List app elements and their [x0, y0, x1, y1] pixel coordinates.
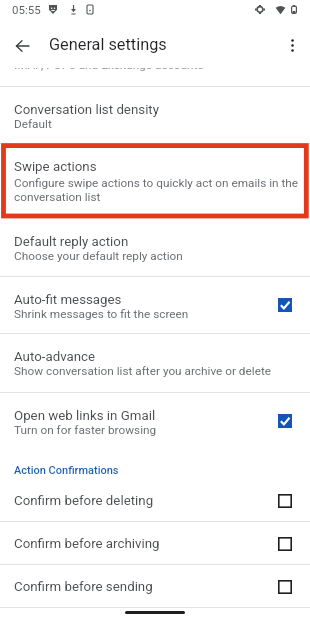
button[interactable]: Default reply action	[0, 219, 310, 277]
staticText: Show conversation list after you archive…	[14, 364, 272, 378]
staticText: Shrink messages to fit the screen	[14, 307, 189, 321]
staticText: Turn on for faster browsing	[14, 423, 157, 437]
staticText: Default reply action	[14, 234, 129, 250]
staticText: Choose your default reply action	[14, 249, 183, 263]
staticText: Configure swipe actions to quickly act o…	[14, 176, 301, 204]
staticText: Confirm before sending	[14, 579, 153, 595]
button[interactable]: Confirm before sending	[0, 565, 310, 608]
button[interactable]: Back	[6, 30, 38, 62]
staticText: 05:55	[12, 3, 41, 16]
button[interactable]: IMAP, POP3 and Exchange accounts	[0, 68, 310, 86]
staticText: Conversation list density	[14, 102, 160, 118]
staticText: Open web links in Gmail	[14, 408, 156, 424]
button[interactable]: Open web links in Gmail	[0, 393, 310, 450]
button[interactable]: Confirm before archiving	[0, 522, 310, 565]
staticText: Auto-fit messages	[14, 292, 122, 308]
button[interactable]: Conversation list density	[0, 87, 310, 144]
staticText: General settings	[49, 35, 167, 54]
button[interactable]: Auto-fit messages	[0, 277, 310, 334]
staticText: Confirm before deleting	[14, 493, 154, 509]
staticText: Confirm before archiving	[14, 536, 160, 552]
button[interactable]: Confirm before deleting	[0, 479, 310, 522]
button[interactable]: Auto-advance	[0, 334, 310, 393]
staticText: Auto-advance	[14, 349, 96, 365]
button[interactable]: Swipe actions	[0, 144, 310, 219]
staticText: Action Confirmations	[14, 464, 119, 477]
button[interactable]: More options	[277, 30, 308, 61]
staticText: Default	[14, 117, 52, 131]
staticText: Swipe actions	[14, 159, 97, 175]
staticText: IMAP, POP3 and Exchange accounts	[14, 68, 204, 72]
